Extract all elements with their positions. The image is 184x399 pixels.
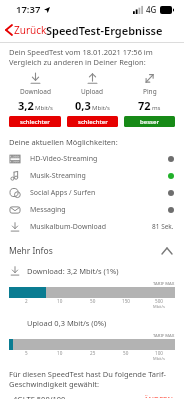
staticText: schlechter — [20, 118, 50, 126]
staticText: Mbit/s — [153, 356, 165, 361]
staticText: 100 — [155, 350, 163, 356]
staticText: TARIF MAX — [153, 333, 175, 339]
button[interactable]: Mehr Infos — [0, 243, 184, 259]
staticText: 150 — [122, 298, 130, 304]
button[interactable]: ÄNDERN — [142, 394, 175, 399]
button[interactable]: schlechter — [9, 116, 61, 127]
staticText: Download: 3,2 Mbit/s (1%) — [27, 266, 119, 276]
button[interactable]: Musik-Streaming — [0, 167, 184, 184]
staticText: schlechter — [78, 118, 108, 126]
staticText: Musik-Streaming — [30, 171, 86, 181]
staticText: Upload — [81, 87, 104, 96]
staticText: Download — [20, 87, 51, 96]
staticText: TARIF MAX — [153, 281, 175, 287]
button[interactable]: besser — [124, 116, 175, 127]
button[interactable]: Messaging — [0, 201, 184, 218]
staticText: 17:37 — [16, 3, 41, 16]
staticText: 81 Sek. — [152, 222, 174, 231]
staticText: Mbit/s — [35, 104, 53, 112]
staticText: 50 — [90, 298, 96, 304]
staticText: 4GLTE 500/100 — [13, 394, 66, 399]
staticText: Upload 0,3 Mbit/s (0%) — [27, 318, 107, 328]
staticText: HD-Video-Streaming — [30, 154, 98, 164]
staticText: SpeedTest-Ergebnisse — [46, 23, 163, 38]
button[interactable]: Zurück — [0, 20, 53, 40]
staticText: Mbit/s — [92, 104, 110, 112]
staticText: Musikalbum-Download — [30, 222, 107, 232]
button[interactable]: Social Apps / Surfen — [0, 184, 184, 201]
staticText: Mehr Infos — [9, 245, 53, 257]
staticText: 0,3 — [75, 98, 91, 113]
staticText: besser — [140, 118, 159, 126]
staticText: 5 — [25, 350, 28, 356]
staticText: 2 — [25, 298, 28, 304]
staticText: 3,2 — [18, 98, 34, 113]
staticText: 4G — [146, 4, 157, 15]
button[interactable]: HD-Video-Streaming — [0, 150, 184, 167]
staticText: ÄNDERN — [144, 395, 173, 398]
staticText: 10 — [57, 298, 63, 304]
staticText: 500 — [155, 298, 163, 304]
staticText: Zurück — [14, 23, 47, 37]
staticText: Deine aktuellen Möglichkeiten: — [9, 137, 118, 147]
staticText: 72 — [138, 98, 151, 113]
staticText: Mbit/s — [153, 304, 165, 309]
button[interactable]: Musikalbum-Download — [0, 218, 184, 235]
staticText: ms — [152, 104, 161, 112]
staticText: Dein SpeedTest vom 18.01.2021 17:56 im V… — [9, 47, 175, 67]
staticText: Social Apps / Surfen — [30, 188, 96, 198]
staticText: Messaging — [30, 205, 66, 215]
other: Mehr Infos einklappen — [162, 248, 172, 254]
staticText: Für diesen SpeedTest hast Du folgende Ta… — [9, 369, 175, 389]
staticText: 25 — [90, 350, 96, 356]
staticText: 10 — [57, 350, 63, 356]
button[interactable]: schlechter — [67, 116, 118, 127]
staticText: Ping — [143, 87, 157, 96]
staticText: 50 — [123, 350, 129, 356]
